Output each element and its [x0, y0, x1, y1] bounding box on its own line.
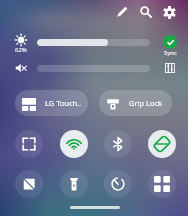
button[interactable]: Screen capture [7, 125, 51, 163]
button[interactable]: Grip Lock [99, 90, 172, 116]
staticText: LG Touch.. [45, 98, 82, 108]
button[interactable] [37, 65, 150, 72]
staticText: Grip Lock [129, 98, 163, 108]
button[interactable]: Sync [158, 35, 182, 57]
button[interactable]: Settings [159, 2, 180, 23]
button[interactable]: Edit [113, 2, 132, 21]
button[interactable]: Brightness [11, 34, 31, 54]
button[interactable]: Timer [96, 165, 140, 203]
button[interactable]: Expand panel [70, 206, 120, 209]
button[interactable]: Sound settings [161, 59, 179, 77]
button[interactable]: Volume [11, 58, 31, 78]
button[interactable]: Wi-Fi [52, 125, 96, 163]
button[interactable]: Auto rotate [140, 125, 184, 163]
button[interactable]: Search [136, 2, 156, 22]
button[interactable]: Bluetooth [96, 125, 140, 163]
staticText: 62% [15, 46, 27, 54]
button[interactable]: Blue light filter [7, 165, 51, 203]
button[interactable] [37, 39, 150, 46]
button[interactable]: Apps [140, 165, 184, 203]
staticText: Sync [164, 49, 177, 57]
button[interactable]: Flashlight [52, 165, 96, 203]
button[interactable]: LG Touch.. [15, 90, 88, 116]
